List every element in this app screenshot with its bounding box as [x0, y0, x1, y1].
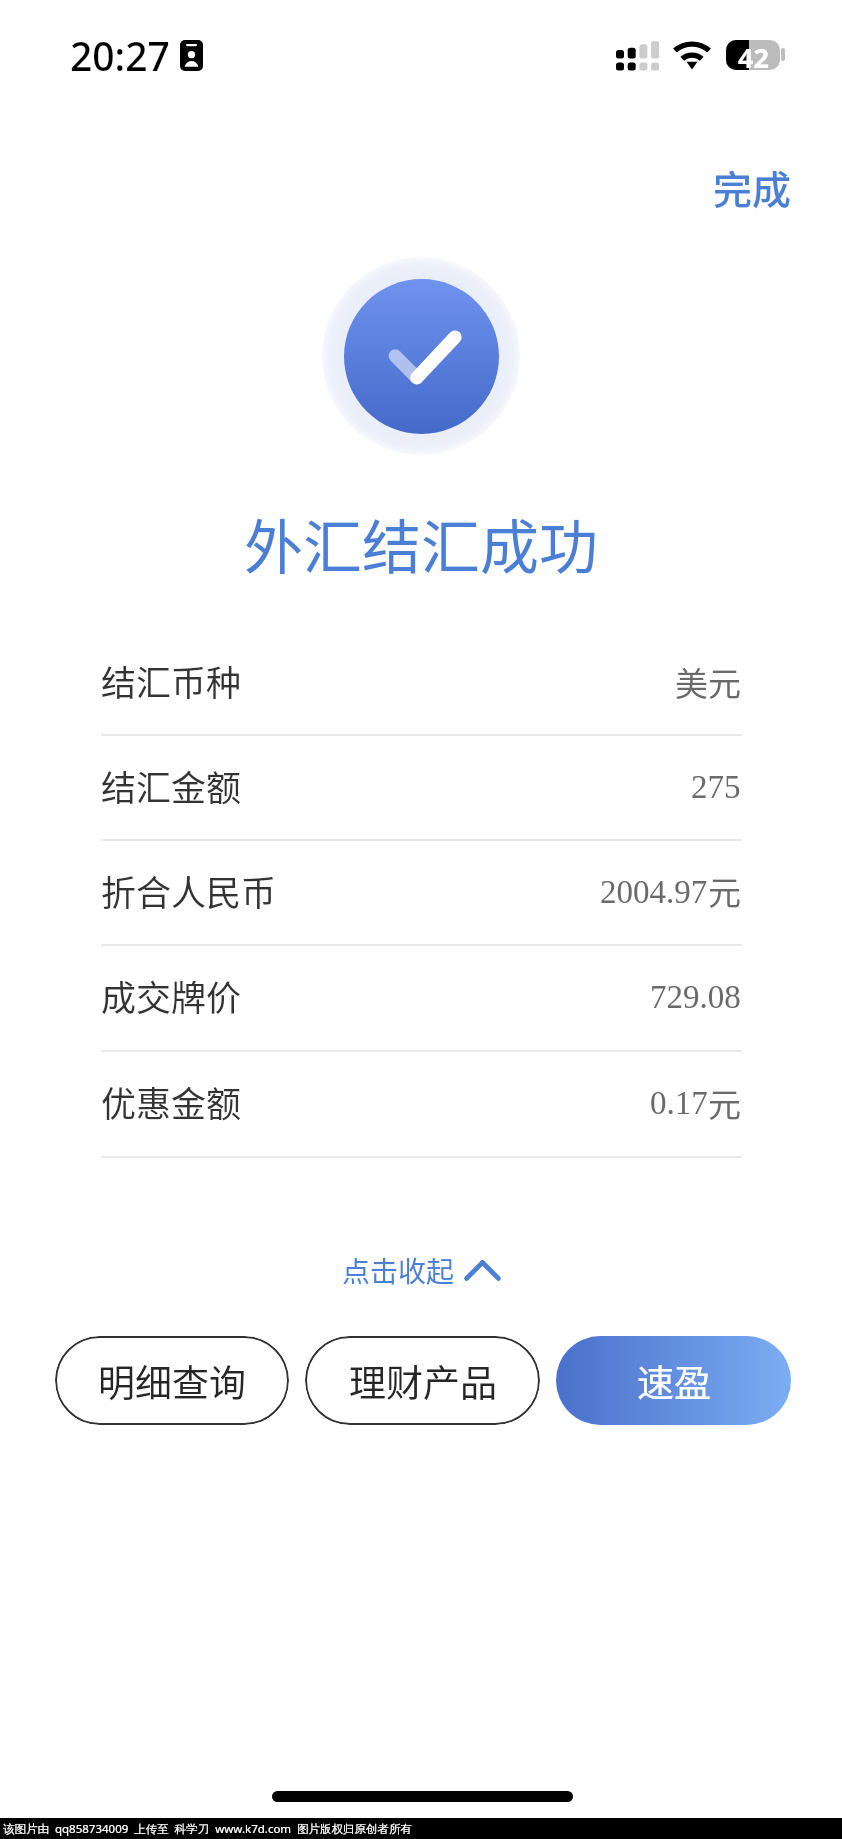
staticText: 结汇币种 — [101, 655, 242, 706]
button[interactable]: 点击收起 — [0, 1235, 842, 1305]
staticText: 折合人民币 — [101, 865, 277, 916]
staticText: 完成 — [713, 159, 792, 215]
button[interactable]: 折合人民币 — [0, 839, 842, 944]
staticText: 20:27 — [70, 29, 170, 82]
staticText: 2004.97 — [600, 874, 708, 911]
button[interactable]: 优惠金额 — [0, 1050, 842, 1156]
staticText: 42 — [738, 39, 769, 69]
other: Wi-Fi — [674, 40, 710, 69]
staticText: 0.17 — [650, 1085, 708, 1122]
staticText: 点击收起 — [342, 1250, 455, 1291]
other: Status icon — [180, 40, 203, 71]
staticText: 外汇结汇成功 — [244, 501, 599, 586]
button[interactable]: 结汇金额 — [0, 734, 842, 839]
staticText: 明细查询 — [98, 1354, 246, 1408]
staticText: 优惠金额 — [101, 1076, 242, 1127]
button[interactable]: 理财产品 — [305, 1336, 540, 1425]
button[interactable]: 成交牌价 — [0, 944, 842, 1050]
staticText: 元 — [708, 1079, 741, 1127]
button[interactable]: 速盈 — [556, 1336, 791, 1425]
staticText: 结汇金额 — [101, 760, 242, 811]
staticText: 275 — [691, 769, 741, 806]
staticText: 理财产品 — [349, 1354, 497, 1408]
staticText: 美元 — [675, 658, 741, 706]
staticText: 该图片由 qq858734009 上传至 科学刀 www.k7d.com 图片版… — [3, 1821, 413, 1837]
button[interactable]: 完成 — [701, 149, 804, 225]
button[interactable]: 结汇币种 — [0, 630, 842, 734]
staticText: 成交牌价 — [101, 970, 242, 1021]
staticText: 元 — [708, 867, 741, 915]
other: Cellular signal — [615, 40, 659, 72]
other: Battery 42 percent — [726, 40, 780, 70]
staticText: 速盈 — [637, 1354, 711, 1408]
button[interactable]: 明细查询 — [55, 1336, 289, 1425]
staticText: 729.08 — [650, 979, 741, 1016]
